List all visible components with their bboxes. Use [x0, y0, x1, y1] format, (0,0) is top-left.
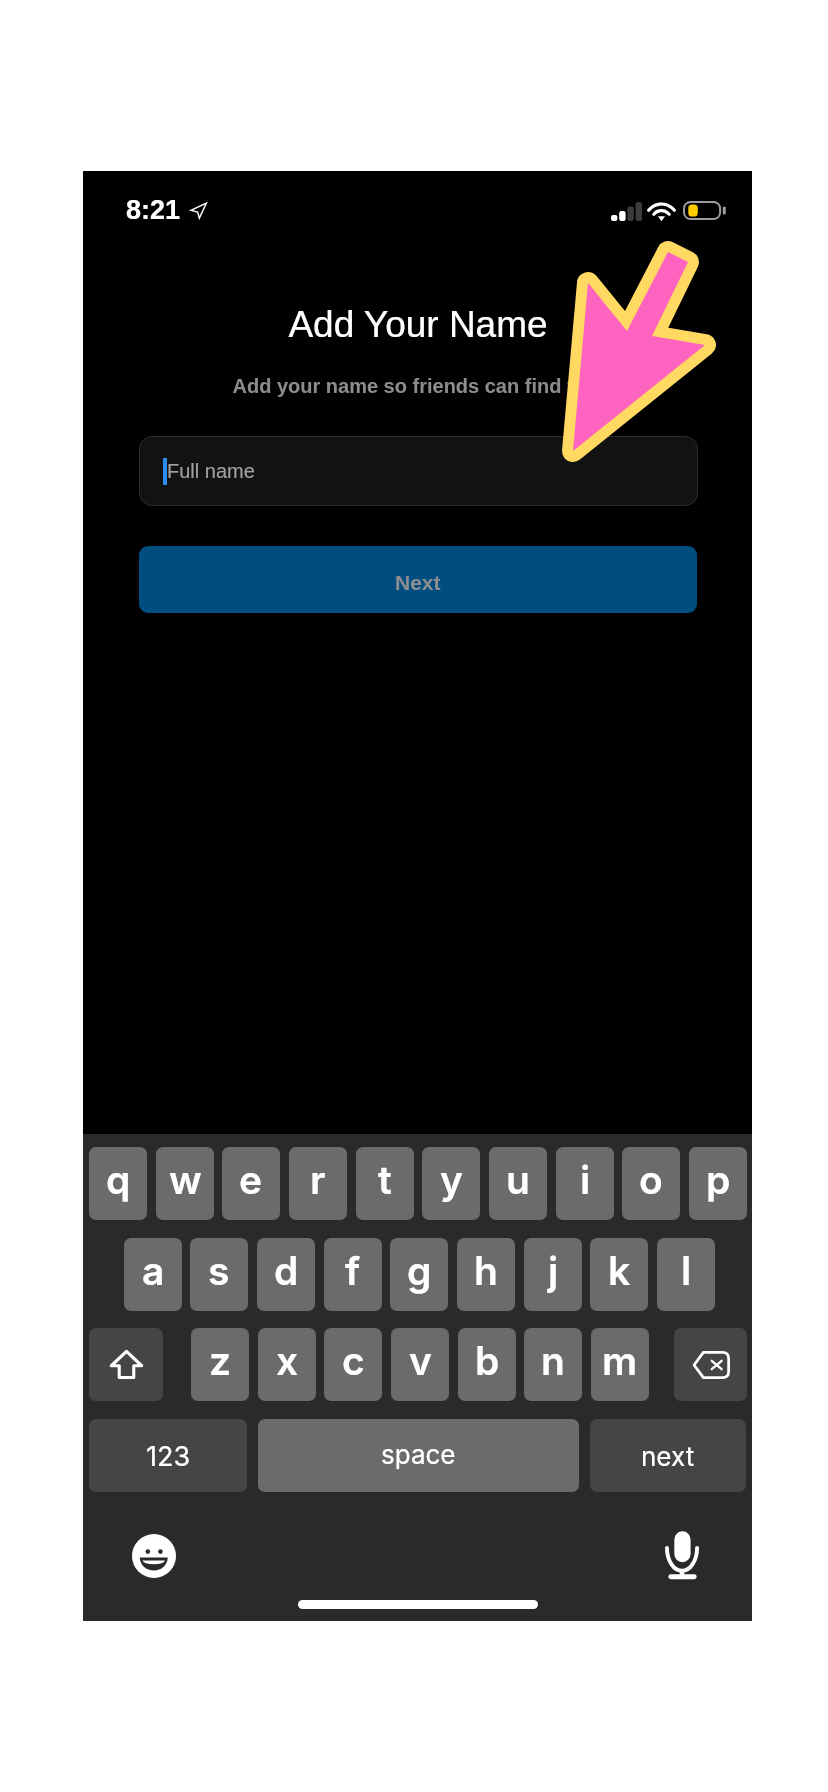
button[interactable]: w: [156, 1147, 214, 1220]
staticText: z: [209, 1337, 232, 1384]
button[interactable]: o: [622, 1147, 680, 1220]
button[interactable]: k: [590, 1238, 648, 1311]
button[interactable]: b: [458, 1328, 516, 1401]
button[interactable]: c: [324, 1328, 382, 1401]
button[interactable]: t: [356, 1147, 414, 1220]
staticText: n: [541, 1337, 565, 1384]
staticText: space: [381, 1439, 456, 1470]
staticText: e: [239, 1156, 263, 1203]
button[interactable]: Emoji keyboard: [132, 1534, 176, 1578]
staticText: s: [208, 1247, 230, 1294]
button[interactable]: i: [556, 1147, 614, 1220]
button[interactable]: next: [590, 1419, 746, 1492]
button[interactable]: Full name: [139, 436, 698, 506]
staticText: Next: [395, 571, 441, 594]
button[interactable]: a: [124, 1238, 182, 1311]
staticText: l: [681, 1247, 692, 1294]
button[interactable]: r: [289, 1147, 347, 1220]
button[interactable]: x: [258, 1328, 316, 1401]
button[interactable]: g: [390, 1238, 448, 1311]
staticText: v: [409, 1337, 432, 1384]
button[interactable]: m: [591, 1328, 649, 1401]
button[interactable]: p: [689, 1147, 747, 1220]
staticText: a: [142, 1247, 165, 1294]
staticText: j: [548, 1247, 559, 1294]
staticText: g: [407, 1247, 432, 1294]
button[interactable]: h: [457, 1238, 515, 1311]
staticText: f: [345, 1247, 361, 1294]
staticText: next: [641, 1441, 695, 1472]
button[interactable]: f: [324, 1238, 382, 1311]
button[interactable]: y: [422, 1147, 480, 1220]
staticText: r: [310, 1156, 326, 1203]
button[interactable]: u: [489, 1147, 547, 1220]
button[interactable]: Shift: [89, 1328, 163, 1401]
button[interactable]: s: [190, 1238, 248, 1311]
staticText: h: [474, 1247, 498, 1294]
staticText: w: [169, 1156, 202, 1203]
staticText: k: [608, 1247, 631, 1294]
button[interactable]: j: [524, 1238, 582, 1311]
staticText: Full name: [167, 460, 255, 482]
staticText: Add Your Name: [288, 304, 548, 345]
button[interactable]: l: [657, 1238, 715, 1311]
staticText: i: [580, 1156, 591, 1203]
staticText: Add your name so friends can find you: [232, 375, 603, 397]
staticText: 8:21: [126, 195, 181, 225]
button[interactable]: 123: [89, 1419, 247, 1492]
button[interactable]: Dictation: [665, 1531, 699, 1580]
staticText: 123: [146, 1440, 191, 1473]
staticText: y: [440, 1156, 463, 1203]
staticText: t: [378, 1156, 392, 1203]
staticText: q: [106, 1156, 131, 1203]
staticText: x: [276, 1337, 299, 1384]
button[interactable]: v: [391, 1328, 449, 1401]
button[interactable]: d: [257, 1238, 315, 1311]
button[interactable]: space: [258, 1419, 579, 1492]
button[interactable]: q: [89, 1147, 147, 1220]
button[interactable]: Next: [139, 546, 697, 613]
staticText: p: [706, 1156, 731, 1203]
button[interactable]: e: [222, 1147, 280, 1220]
staticText: o: [639, 1156, 663, 1203]
staticText: u: [506, 1156, 530, 1203]
button[interactable]: z: [191, 1328, 249, 1401]
staticText: c: [342, 1337, 365, 1384]
button[interactable]: Backspace: [674, 1328, 747, 1401]
staticText: m: [602, 1337, 638, 1384]
button[interactable]: n: [524, 1328, 582, 1401]
staticText: b: [475, 1337, 500, 1384]
staticText: d: [274, 1247, 299, 1294]
